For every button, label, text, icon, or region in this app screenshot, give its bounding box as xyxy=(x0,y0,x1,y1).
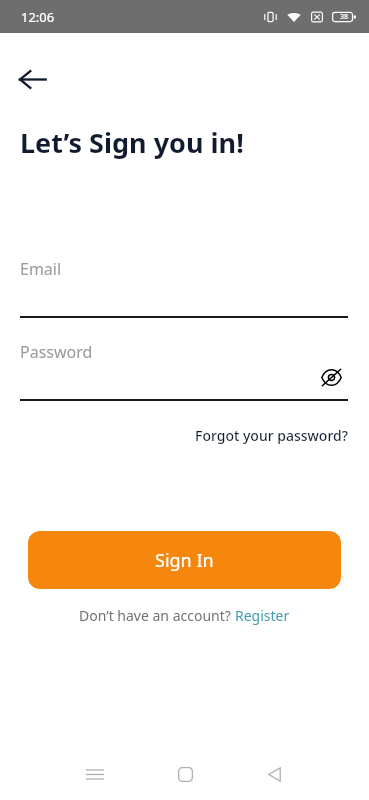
button[interactable]: Register xyxy=(235,606,290,625)
staticText: 38 xyxy=(340,12,349,22)
button[interactable]: Back xyxy=(254,754,294,794)
button[interactable]: Password xyxy=(20,335,348,401)
staticText: Don’t have an account? xyxy=(79,606,235,625)
button[interactable]: Show password xyxy=(314,360,348,394)
staticText: Password xyxy=(20,341,93,363)
button[interactable]: Email xyxy=(20,252,348,318)
button[interactable]: Back xyxy=(9,56,55,102)
staticText: Let’s Sign you in! xyxy=(20,124,244,161)
button[interactable]: Forgot your password? xyxy=(190,421,353,450)
staticText: Forgot your password? xyxy=(195,426,348,445)
button[interactable]: Home xyxy=(165,754,205,794)
staticText: Register xyxy=(235,606,290,625)
staticText: Sign In xyxy=(155,548,214,573)
staticText: Email xyxy=(20,258,62,280)
button[interactable]: Sign In xyxy=(28,531,341,589)
staticText: 12:06 xyxy=(21,8,55,26)
button[interactable]: Recent apps xyxy=(75,754,115,794)
